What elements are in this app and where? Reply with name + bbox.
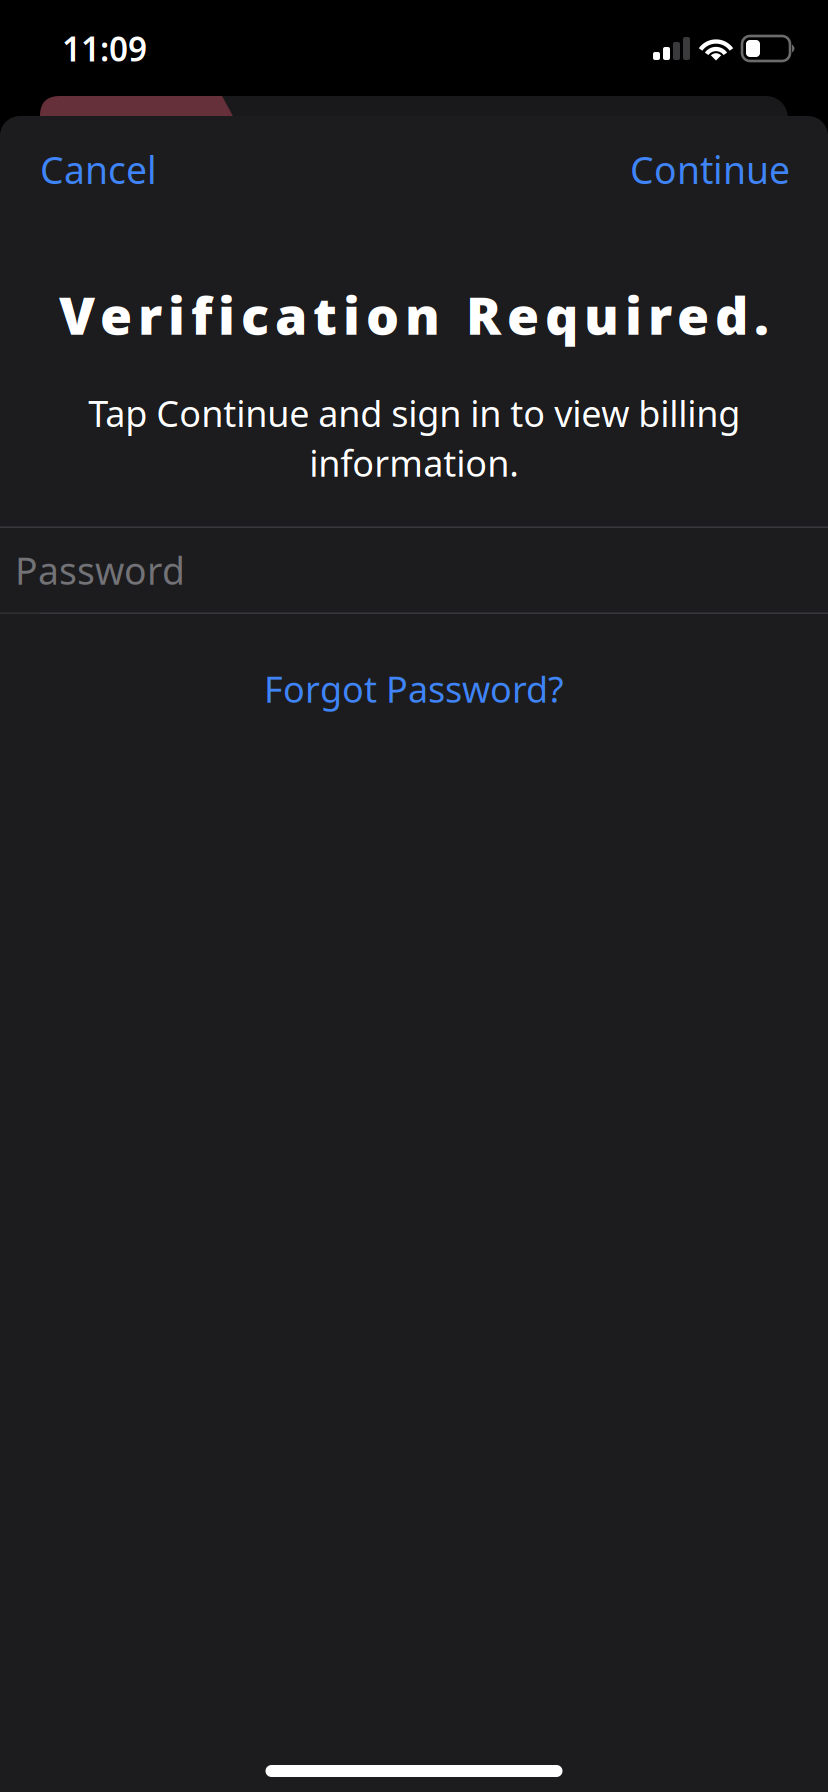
staticText: Forgot Password?: [264, 665, 564, 713]
button[interactable]: Cancel: [0, 116, 181, 223]
staticText: Tap Continue and sign in to view billing…: [88, 389, 740, 487]
staticText: Password: [15, 545, 185, 595]
staticText: Verification Required.: [59, 280, 769, 349]
button[interactable]: Continue: [606, 116, 828, 223]
staticText: Cancel: [40, 145, 157, 194]
button[interactable]: Forgot Password?: [0, 662, 828, 716]
staticText: Continue: [630, 145, 790, 194]
staticText: 11:09: [62, 26, 147, 71]
